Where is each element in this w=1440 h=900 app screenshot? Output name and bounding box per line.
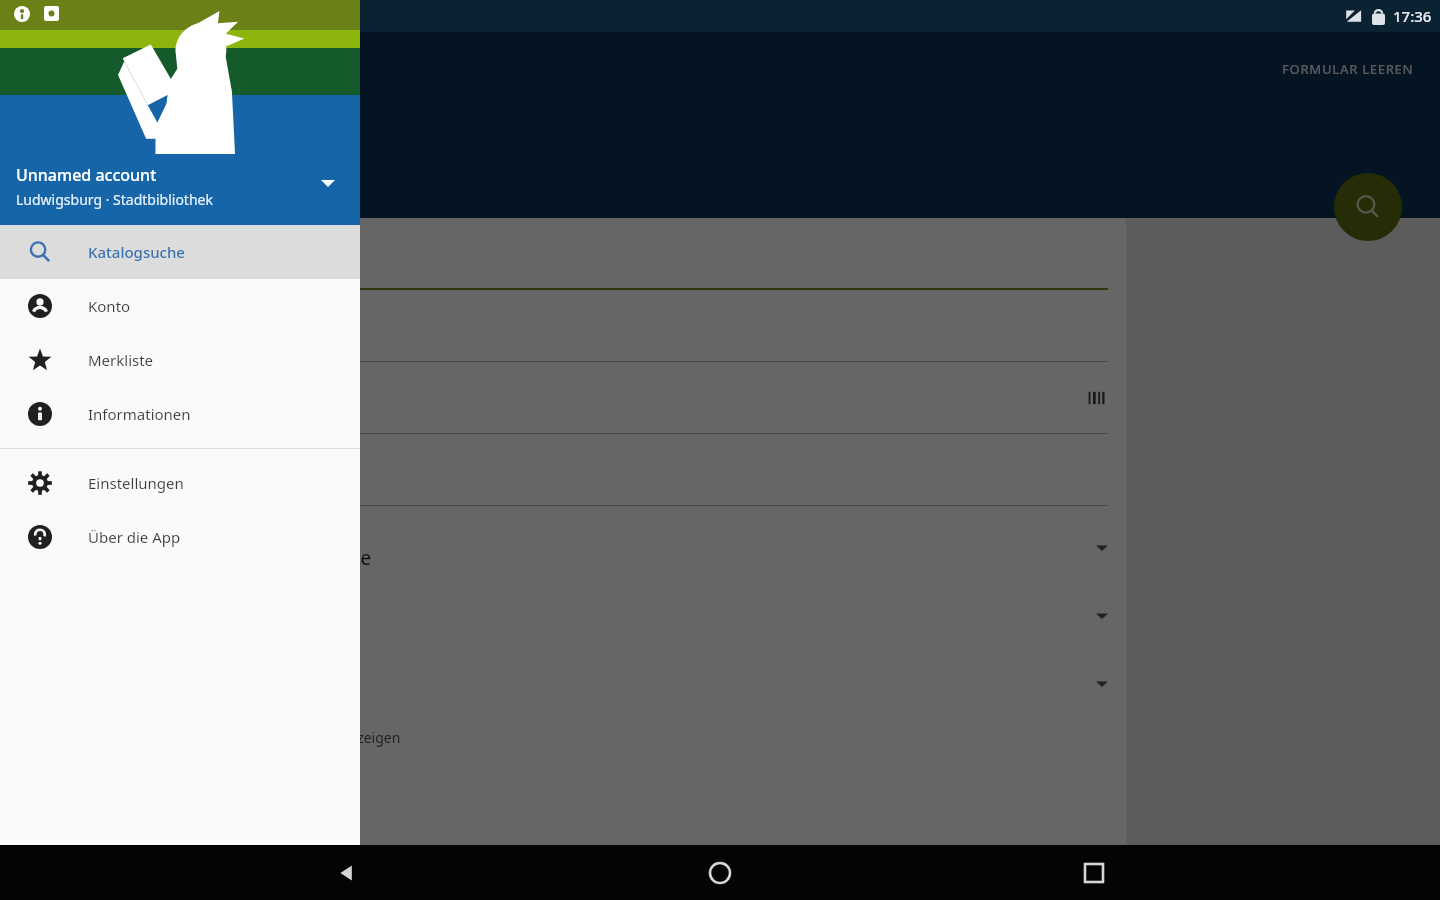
staticText: Erscheinungsjahr <box>198 446 305 464</box>
button[interactable]: Switch account <box>314 169 342 197</box>
staticText: Alle Bibliotheksorte <box>198 545 372 571</box>
staticText: Informationen <box>88 404 191 424</box>
staticText: 17:36 <box>1393 6 1432 26</box>
staticText: Harry Potter <box>198 257 320 286</box>
staticText: Ludwigsburg · Stadtbibliothek <box>16 190 213 209</box>
button[interactable]: Merkliste <box>0 333 360 387</box>
staticText: FORMULAR LEEREN <box>1282 60 1414 78</box>
button[interactable]: FORMULAR LEEREN <box>1272 52 1424 86</box>
button[interactable]: Einstellungen <box>0 456 360 510</box>
staticText: Ludwigsburg <box>72 44 229 78</box>
staticText: Über die App <box>88 527 181 547</box>
button[interactable]: Search <box>1334 173 1402 241</box>
staticText: Unnamed account <box>16 164 157 186</box>
button[interactable]: Recents <box>1067 846 1121 900</box>
button[interactable]: Katalogsuche <box>0 225 360 279</box>
staticText: Konto <box>88 296 131 316</box>
button[interactable]: Home <box>693 846 747 900</box>
staticText: Katalogsuche <box>88 242 185 262</box>
button[interactable]: Über die App <box>0 510 360 564</box>
staticText: Merkliste <box>88 350 154 370</box>
staticText: Einstellungen <box>88 473 184 493</box>
staticText: Mehr Suchfelder anzeigen <box>228 728 401 747</box>
button[interactable]: Informationen <box>0 387 360 441</box>
button[interactable]: Konto <box>0 279 360 333</box>
button[interactable]: Back <box>320 846 374 900</box>
staticText: Stadtbibliothek <box>72 82 172 101</box>
